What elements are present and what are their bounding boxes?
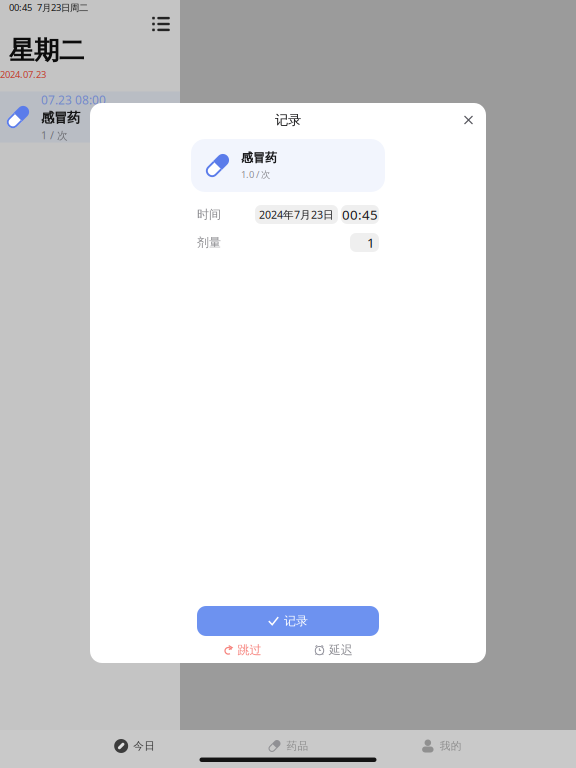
staticText: 时间 [197,207,221,222]
staticText: 感冒药 [241,150,277,165]
button[interactable]: 我的 [365,735,518,757]
staticText: 今日 [133,739,155,752]
button[interactable]: 1 [350,233,379,252]
staticText: 跳过 [237,643,261,657]
staticText: 星期二 [9,35,84,66]
staticText: 记录 [275,112,301,128]
button[interactable]: 药品 [211,735,365,757]
button[interactable]: 07.23 08:00 [0,91,180,142]
button[interactable]: 2024年7月23日 [255,205,338,224]
button[interactable]: Close [464,115,473,124]
button[interactable]: 延迟 [288,638,379,662]
button[interactable]: List [152,17,170,31]
staticText: 1 [367,234,375,251]
button[interactable]: 跳过 [197,638,288,662]
button[interactable]: 记录 [197,606,379,636]
staticText: 剂量 [197,235,221,250]
staticText: 1 / 次 [41,128,68,142]
staticText: 1.0 / 次 [241,168,270,181]
button[interactable]: 00:45 [341,205,379,224]
staticText: 2024年7月23日 [259,207,334,222]
staticText: 7月23日周二 [37,1,88,14]
button[interactable]: 今日 [58,735,211,757]
staticText: 感冒药 [41,110,80,126]
staticText: 药品 [286,739,308,752]
staticText: 07.23 08:00 [41,92,106,108]
staticText: 00:45 [342,206,378,223]
staticText: 记录 [284,614,308,628]
staticText: 2024.07.23 [0,68,46,80]
staticText: 延迟 [329,643,353,657]
staticText: 00:45 [9,1,32,14]
staticText: 我的 [440,739,462,752]
